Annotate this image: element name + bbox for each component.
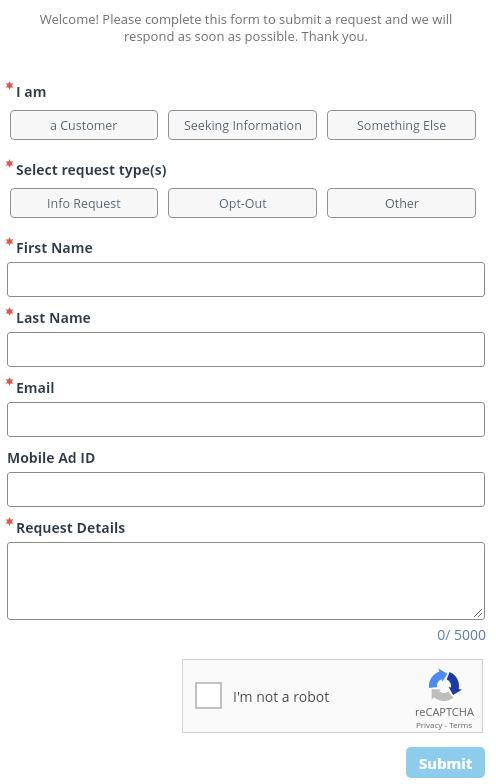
button[interactable]	[7, 332, 485, 367]
button[interactable]: I'm not a robot checkbox	[182, 659, 483, 733]
button[interactable]	[7, 472, 485, 507]
staticText: Email	[16, 378, 55, 397]
staticText: Other	[385, 195, 419, 212]
staticText: Info Request	[47, 195, 121, 212]
staticText: Welcome! Please complete this form to su…	[32, 10, 460, 45]
staticText: 0/ 5000	[300, 625, 486, 644]
button[interactable]	[7, 402, 485, 437]
staticText: Last Name	[16, 308, 91, 327]
staticText: Opt-Out	[219, 195, 267, 212]
button[interactable]: I'm not a robot checkbox	[195, 682, 222, 709]
button[interactable]: Info Request	[10, 188, 158, 218]
staticText: a Customer	[50, 117, 118, 134]
staticText: Something Else	[357, 117, 447, 134]
staticText: Privacy - Terms	[416, 719, 473, 730]
staticText: Mobile Ad ID	[7, 448, 96, 467]
staticText: Request Details	[16, 518, 126, 537]
button[interactable]: Submit	[406, 747, 485, 778]
staticText: I am	[16, 82, 47, 101]
button[interactable]	[7, 542, 485, 620]
button[interactable]: Seeking Information	[168, 110, 317, 140]
staticText: First Name	[16, 238, 93, 257]
button[interactable]: Opt-Out	[168, 188, 317, 218]
button[interactable]: Something Else	[327, 110, 476, 140]
staticText: I'm not a robot	[233, 687, 330, 706]
staticText: Select request type(s)	[16, 160, 167, 179]
button[interactable]	[7, 262, 485, 297]
staticText: Seeking Information	[184, 117, 302, 134]
button[interactable]: Other	[327, 188, 476, 218]
button[interactable]: a Customer	[10, 110, 158, 140]
staticText: Submit	[419, 753, 473, 773]
staticText: reCAPTCHA	[415, 704, 474, 719]
